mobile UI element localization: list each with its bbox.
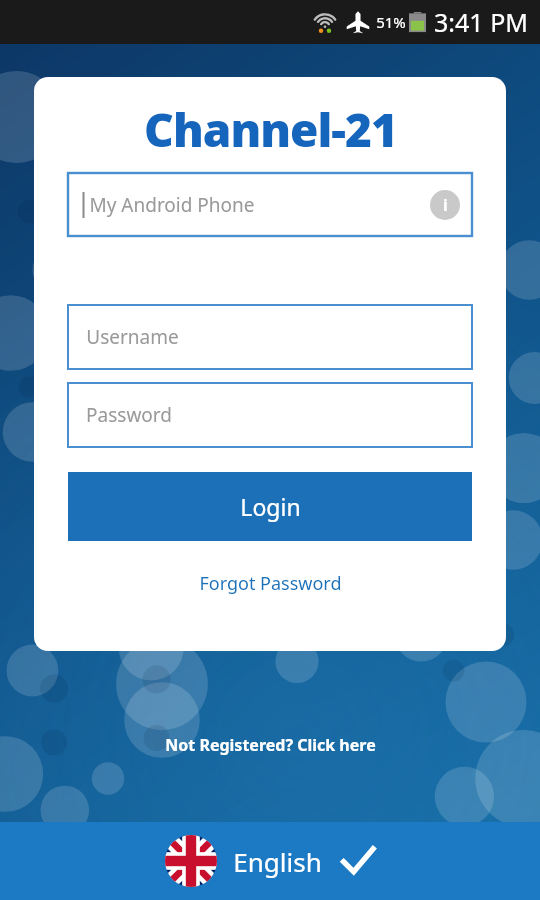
other: Language selected [340, 843, 376, 879]
staticText: English [233, 844, 322, 879]
button[interactable]: Login [68, 472, 472, 541]
staticText: 51% [376, 12, 406, 32]
staticText: Channel-21 [144, 98, 397, 161]
staticText: 3:41 PM [434, 5, 528, 39]
staticText: Not Registered? Click here [165, 734, 376, 756]
staticText: My Android Phone [89, 192, 255, 218]
staticText: Username [86, 324, 179, 350]
button[interactable]: My Android Phone [68, 173, 472, 236]
button[interactable]: Password [68, 383, 472, 447]
staticText: Forgot Password [199, 571, 342, 596]
button[interactable]: Username [68, 305, 472, 369]
staticText: Login [240, 491, 301, 522]
staticText: Password [86, 402, 172, 428]
button[interactable]: Forgot Password [189, 567, 352, 600]
button[interactable]: Not Registered? Click here [151, 728, 390, 762]
staticText: i [443, 194, 448, 216]
button[interactable]: Device name info [430, 190, 460, 220]
button[interactable]: English [0, 822, 540, 900]
